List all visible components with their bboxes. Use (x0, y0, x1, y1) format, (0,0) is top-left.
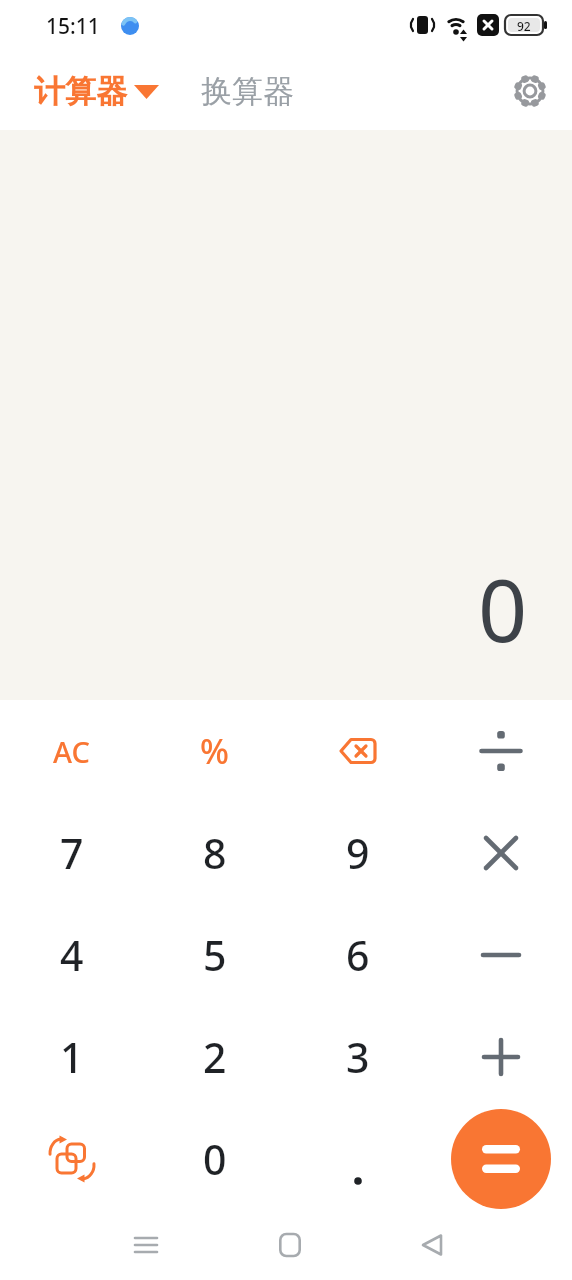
staticText: 15:11 (46, 12, 100, 41)
staticText: 3 (346, 1029, 370, 1085)
staticText: 2 (203, 1029, 227, 1085)
staticText: 6 (346, 927, 370, 983)
staticText: 7 (60, 825, 84, 881)
button[interactable] (513, 74, 547, 108)
staticText: 1 (60, 1029, 84, 1085)
button[interactable]: 0 (143, 1108, 286, 1210)
button[interactable] (429, 1108, 572, 1210)
button[interactable]: 9 (286, 802, 429, 904)
button[interactable]: AC (0, 700, 143, 802)
button[interactable]: 8 (143, 802, 286, 904)
staticText: 92 (517, 18, 531, 34)
staticText: 0 (478, 550, 528, 667)
button[interactable]: 5 (143, 904, 286, 1006)
button[interactable] (429, 802, 572, 904)
button[interactable]: 6 (286, 904, 429, 1006)
staticText: 8 (203, 825, 227, 881)
staticText: 9 (346, 825, 370, 881)
staticText: 5 (203, 927, 227, 983)
button[interactable]: 2 (143, 1006, 286, 1108)
button[interactable] (286, 1108, 429, 1210)
button[interactable] (429, 700, 572, 802)
button[interactable]: 1 (0, 1006, 143, 1108)
button[interactable]: 4 (0, 904, 143, 1006)
staticText: % (200, 728, 229, 774)
button[interactable] (429, 904, 572, 1006)
button[interactable] (268, 1223, 312, 1267)
button[interactable]: % (143, 700, 286, 802)
button[interactable] (410, 1223, 454, 1267)
button[interactable] (0, 1108, 143, 1210)
staticText: 4 (60, 927, 84, 983)
button[interactable]: 3 (286, 1006, 429, 1108)
staticText: 0 (203, 1131, 227, 1187)
button[interactable] (429, 1006, 572, 1108)
button[interactable] (124, 1223, 168, 1267)
button[interactable] (286, 700, 429, 802)
button[interactable]: 7 (0, 802, 143, 904)
staticText: 计算器 (34, 72, 127, 111)
staticText: AC (53, 732, 90, 771)
button[interactable]: 计算器 (34, 72, 159, 111)
button[interactable]: 换算器 (201, 72, 294, 111)
button[interactable] (451, 1109, 551, 1209)
